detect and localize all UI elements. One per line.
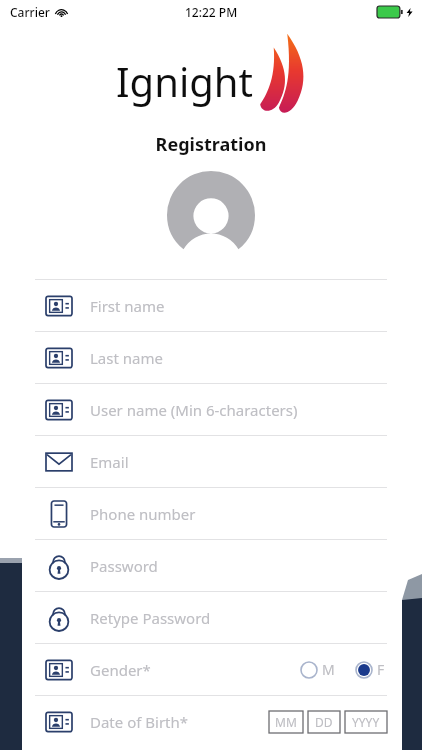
staticText: Email	[90, 452, 387, 472]
other: Phone	[46, 501, 72, 527]
button[interactable]: ID	[0, 644, 422, 695]
button[interactable]: YYYY	[345, 711, 387, 733]
button[interactable]: ID	[0, 384, 422, 435]
staticText: M	[322, 660, 335, 679]
button[interactable]: Password	[0, 540, 422, 591]
other: ID	[46, 397, 72, 423]
button[interactable]: DD	[308, 711, 340, 733]
button[interactable]: Email	[0, 436, 422, 487]
staticText: DD	[315, 714, 333, 730]
button[interactable]: F	[353, 660, 387, 679]
other: ID	[46, 657, 72, 683]
button[interactable]: Phone	[0, 488, 422, 539]
button[interactable]: Password	[0, 592, 422, 643]
staticText: MM	[275, 714, 297, 730]
staticText: Last name	[90, 348, 387, 368]
other: Password	[46, 605, 72, 631]
other: ID	[46, 709, 72, 735]
button[interactable]: M	[298, 660, 337, 679]
staticText: Carrier	[10, 4, 50, 20]
other: ID	[46, 293, 72, 319]
staticText: Registration	[0, 132, 422, 157]
other: ID	[46, 345, 72, 371]
button[interactable]: MM	[269, 711, 303, 733]
staticText: First name	[90, 296, 387, 316]
button[interactable]: ID	[0, 280, 422, 331]
staticText: User name (Min 6-characters)	[90, 400, 387, 420]
staticText: Password	[90, 556, 387, 576]
button[interactable]: ID	[0, 696, 422, 747]
staticText: Date of Birth*	[90, 712, 269, 732]
button[interactable]: ID	[0, 332, 422, 383]
other: Password	[46, 553, 72, 579]
staticText: Retype Password	[90, 608, 387, 628]
staticText: Gender*	[90, 660, 298, 680]
other: Email	[46, 449, 72, 475]
staticText: Ignight	[116, 54, 253, 108]
staticText: Phone number	[90, 504, 387, 524]
staticText: 12:22 PM	[185, 4, 238, 20]
staticText: YYYY	[352, 714, 380, 730]
staticText: F	[377, 660, 385, 679]
